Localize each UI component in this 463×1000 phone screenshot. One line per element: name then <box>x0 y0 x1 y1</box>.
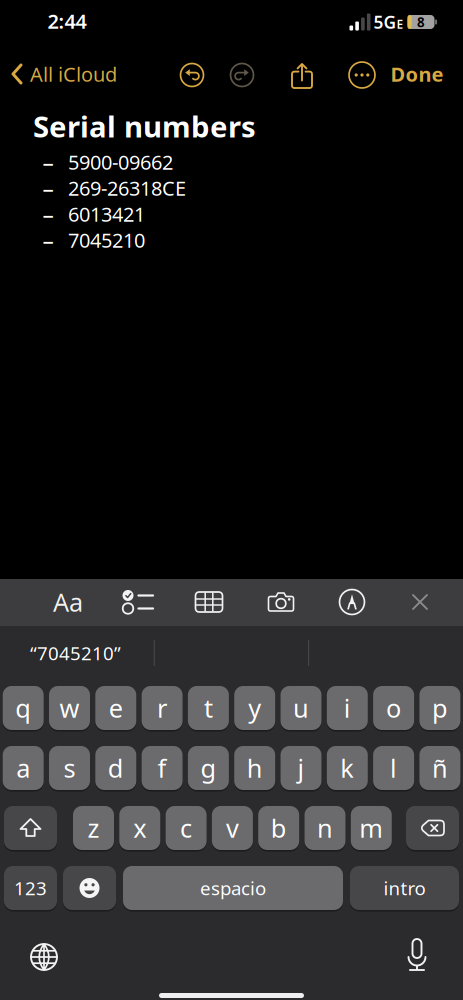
button[interactable]: n <box>304 804 345 851</box>
button[interactable]: a <box>3 744 44 791</box>
staticText: Serial numbers <box>33 106 256 145</box>
button[interactable]: Format <box>41 578 95 625</box>
staticText: s <box>63 751 75 785</box>
staticText: 123 <box>14 876 47 900</box>
staticText: r <box>157 691 167 725</box>
staticText: f <box>158 751 167 785</box>
staticText: v <box>226 811 239 845</box>
button[interactable]: Emoji <box>63 864 116 911</box>
staticText: w <box>59 691 79 725</box>
staticText: z <box>87 811 99 845</box>
button[interactable]: m <box>351 804 392 851</box>
button[interactable]: Done <box>387 54 447 94</box>
button[interactable]: Undo <box>174 57 210 93</box>
staticText: “7045210” <box>30 641 121 665</box>
button[interactable]: w <box>49 684 90 731</box>
staticText: intro <box>383 876 425 900</box>
button[interactable]: r <box>142 684 183 731</box>
button[interactable]: h <box>234 744 275 791</box>
staticText: c <box>180 811 192 845</box>
button[interactable]: Checklist <box>112 578 166 625</box>
button[interactable]: z <box>73 804 114 851</box>
button[interactable]: i <box>327 684 368 731</box>
button[interactable]: Dictation <box>395 933 439 977</box>
staticText: l <box>390 751 397 785</box>
button[interactable]: Markup <box>325 578 379 625</box>
button[interactable]: j <box>280 744 321 791</box>
staticText: E <box>396 16 403 32</box>
button[interactable]: ñ <box>419 744 460 791</box>
staticText: 5G <box>373 10 396 33</box>
button[interactable]: t <box>188 684 229 731</box>
button[interactable]: k <box>327 744 368 791</box>
button[interactable]: Table <box>182 578 236 625</box>
staticText: a <box>16 751 30 785</box>
staticText: x <box>133 811 146 845</box>
staticText: o <box>386 691 401 725</box>
button[interactable]: Share <box>284 56 320 92</box>
button[interactable]: espacio <box>123 864 343 911</box>
staticText: e <box>109 691 123 725</box>
button[interactable]: y <box>234 684 275 731</box>
staticText: ñ <box>432 751 448 785</box>
staticText: q <box>15 691 31 725</box>
button[interactable]: Dismiss keyboard <box>398 578 442 625</box>
button[interactable]: l <box>373 744 414 791</box>
staticText: 2:44 <box>47 8 86 34</box>
button[interactable]: e <box>95 684 136 731</box>
staticText: b <box>271 811 287 845</box>
staticText: 5900-09662 <box>68 149 173 175</box>
button[interactable]: Next keyboard <box>22 935 66 979</box>
staticText: g <box>200 751 216 785</box>
button[interactable]: g <box>188 744 229 791</box>
staticText: t <box>204 691 213 725</box>
button[interactable]: “7045210” <box>30 633 170 673</box>
staticText: 269-26318CE <box>68 175 186 201</box>
staticText: i <box>344 691 351 725</box>
staticText: n <box>317 811 333 845</box>
button[interactable]: More <box>344 57 380 93</box>
staticText: All iCloud <box>30 61 117 87</box>
button[interactable]: Redo <box>224 57 260 93</box>
staticText: u <box>293 691 309 725</box>
staticText: m <box>359 811 383 845</box>
staticText: y <box>248 691 261 725</box>
staticText: – <box>42 147 53 177</box>
button[interactable]: Delete <box>406 804 459 851</box>
staticText: j <box>297 751 304 785</box>
button[interactable]: x <box>119 804 160 851</box>
button[interactable]: 123 <box>4 864 57 911</box>
staticText: h <box>247 751 263 785</box>
staticText: – <box>42 225 53 255</box>
button[interactable]: intro <box>350 864 459 911</box>
staticText: d <box>108 751 124 785</box>
button[interactable]: f <box>142 744 183 791</box>
button[interactable]: v <box>212 804 253 851</box>
staticText: k <box>340 751 354 785</box>
staticText: Aa <box>53 585 83 619</box>
button[interactable]: o <box>373 684 414 731</box>
staticText: p <box>432 691 448 725</box>
button[interactable]: c <box>166 804 207 851</box>
staticText: 6013421 <box>68 201 145 227</box>
button[interactable]: Back <box>11 54 131 94</box>
staticText: Done <box>390 61 443 87</box>
staticText: – <box>42 199 53 229</box>
staticText: – <box>42 173 53 203</box>
button[interactable]: b <box>258 804 299 851</box>
button[interactable]: d <box>95 744 136 791</box>
staticText: espacio <box>200 876 266 900</box>
button[interactable]: u <box>280 684 321 731</box>
staticText: 7045210 <box>68 227 145 253</box>
button[interactable]: q <box>3 684 44 731</box>
button[interactable]: Camera <box>254 578 308 625</box>
button[interactable]: p <box>419 684 460 731</box>
button[interactable]: Shift <box>4 804 57 851</box>
button[interactable]: s <box>49 744 90 791</box>
staticText: 8 <box>417 13 425 31</box>
